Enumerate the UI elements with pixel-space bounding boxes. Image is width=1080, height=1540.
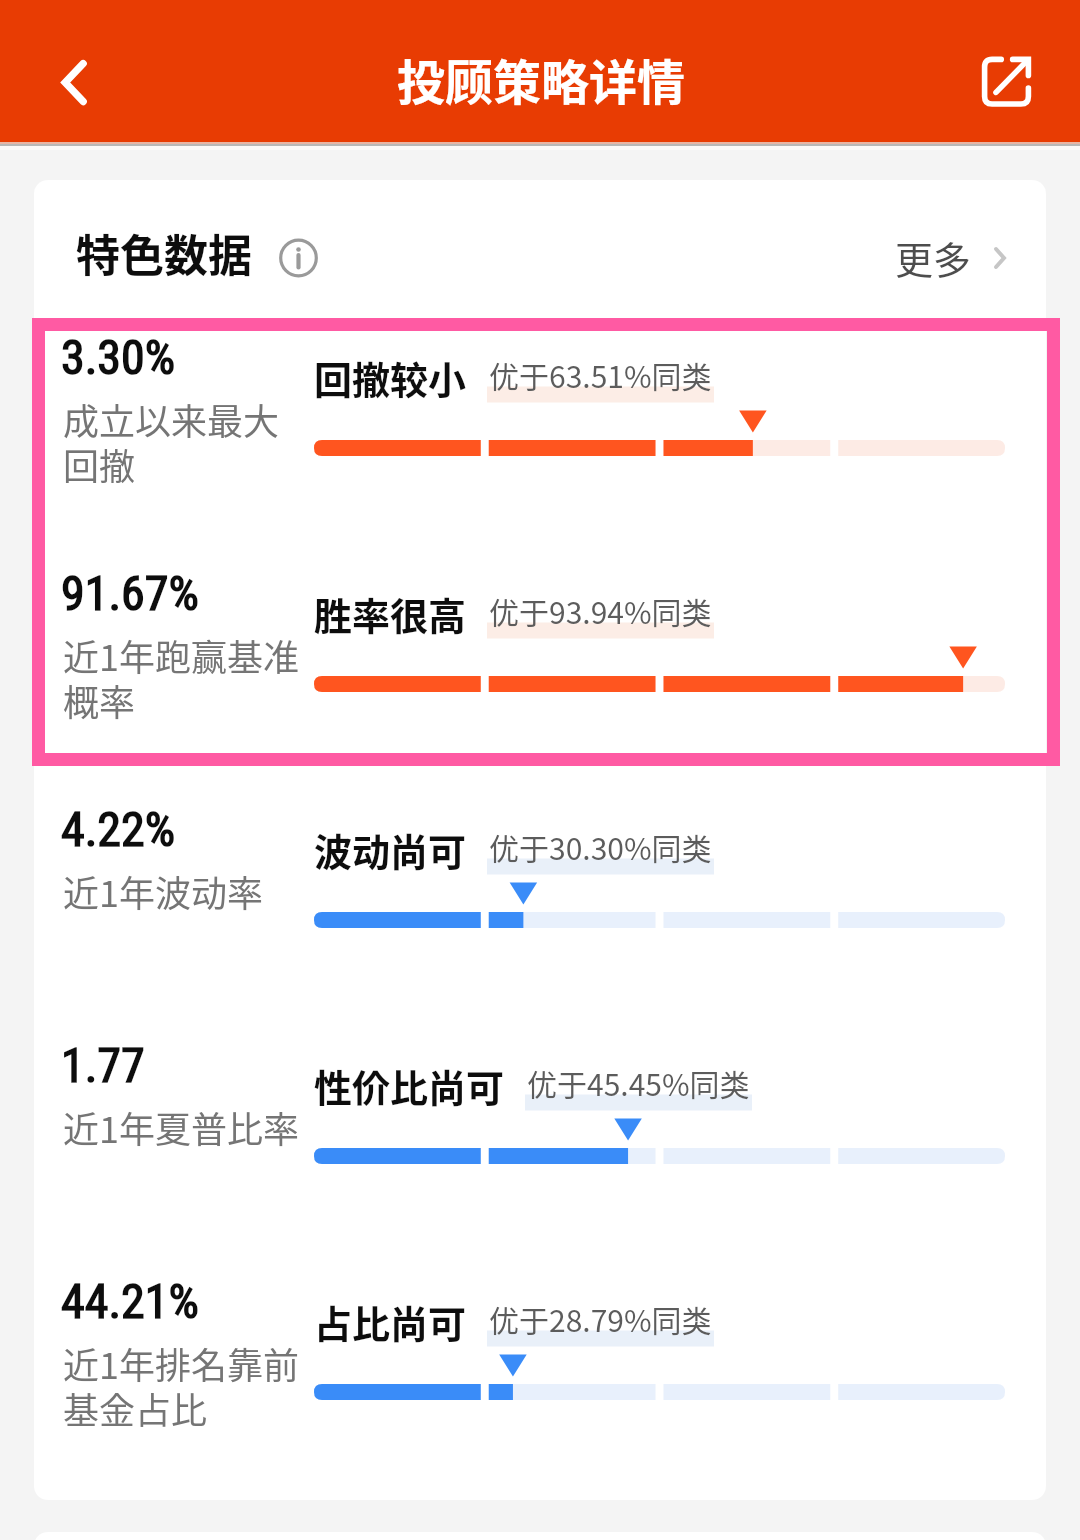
staticText: 特色数据 [76,221,252,285]
staticText: 占比尚可 [314,1294,467,1349]
staticText: 优于93.94%同类 [489,589,712,632]
staticText: 优于30.30%同类 [489,825,712,868]
button[interactable]: Back [30,26,120,116]
staticText: 优于45.45%同类 [527,1061,750,1104]
staticText: 44.21% [61,1273,199,1329]
staticText: 4.22% [61,801,176,857]
staticText: 性价比尚可 [314,1058,505,1113]
staticText: 近1年夏普比率 [63,1101,299,1153]
staticText: 3.30% [61,329,176,385]
staticText: 投顾策略详情 [397,44,686,114]
staticText: 更多 [895,230,972,285]
button[interactable]: Share [962,36,1052,126]
staticText: 优于28.79%同类 [489,1297,712,1340]
staticText: 波动尚可 [314,822,467,877]
staticText: 成立以来最大 回撤 [63,393,280,490]
button[interactable]: Information [268,228,328,288]
staticText: 回撤较小 [314,350,467,405]
staticText: 胜率很高 [314,586,467,641]
staticText: 近1年排名靠前 基金占比 [63,1337,299,1434]
staticText: 91.67% [61,565,199,621]
staticText: 1.77 [61,1037,145,1093]
button[interactable]: 更多 [895,230,1006,285]
staticText: 近1年跑赢基准 概率 [63,629,299,726]
staticText: 优于63.51%同类 [489,353,712,396]
staticText: 近1年波动率 [63,865,263,917]
